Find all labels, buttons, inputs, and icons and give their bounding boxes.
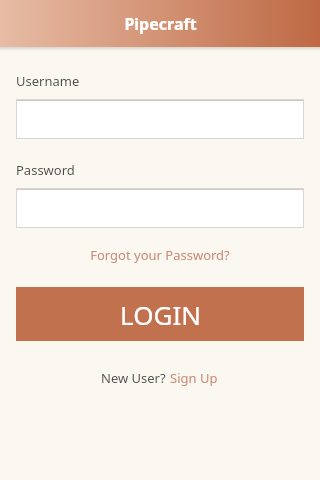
staticText: Password bbox=[16, 161, 75, 179]
button[interactable]: Password input bbox=[16, 188, 304, 228]
staticText: New User? bbox=[101, 369, 166, 387]
staticText: Forgot your Password? bbox=[90, 246, 230, 264]
staticText: Sign Up bbox=[170, 369, 218, 387]
button[interactable]: LOGIN bbox=[16, 287, 304, 341]
button[interactable]: Forgot your Password? bbox=[0, 241, 320, 269]
staticText: Username bbox=[16, 72, 80, 90]
button[interactable]: Username input bbox=[16, 99, 304, 139]
button[interactable]: Sign Up bbox=[166, 366, 220, 390]
staticText: Pipecraft bbox=[124, 13, 197, 35]
staticText: LOGIN bbox=[120, 297, 201, 332]
